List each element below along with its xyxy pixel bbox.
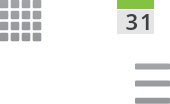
button[interactable]: Calendar (117, 0, 154, 34)
button[interactable]: Apps (0, 0, 42, 42)
staticText: 31 (125, 6, 155, 30)
button[interactable]: Menu (135, 63, 170, 104)
